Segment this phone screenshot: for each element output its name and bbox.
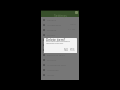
button[interactable]: Sound & vibration [41,42,79,47]
button[interactable]: Privacy [41,32,79,37]
button[interactable]: Appearance [41,22,79,27]
staticText: Notifications [47,38,62,41]
button[interactable]: General [41,17,79,22]
staticText: Sound & vibration [47,43,69,46]
staticText: remove the file. [46,41,64,44]
button[interactable]: YES [69,48,76,51]
staticText: General [47,18,57,21]
button[interactable]: Storage [41,27,79,32]
staticText: Privacy [47,33,56,36]
button[interactable]: Language [41,67,79,72]
staticText: YES [70,48,75,51]
staticText: Backup & reset [47,53,65,56]
button[interactable]: Backup & reset [41,52,79,57]
staticText: Security [47,58,57,61]
staticText: Delete item? [46,38,66,42]
button[interactable]: Accounts & sync [41,62,79,67]
staticText: Language [47,68,59,71]
staticText: This will permanently [46,39,70,42]
staticText: Accounts & sync [47,63,67,66]
button[interactable]: Search [75,11,78,14]
staticText: Wi-Fi [70,48,76,51]
staticText: NO [64,48,68,51]
button[interactable]: Notifications [41,37,79,42]
staticText: Settings [54,13,67,18]
staticText: About [47,73,55,76]
staticText: Appearance [47,23,62,26]
button[interactable]: NO [63,48,69,51]
button[interactable]: Security [41,57,79,62]
button[interactable]: About [41,72,79,77]
staticText: Storage [47,28,57,31]
button[interactable]: Sync [41,47,79,52]
